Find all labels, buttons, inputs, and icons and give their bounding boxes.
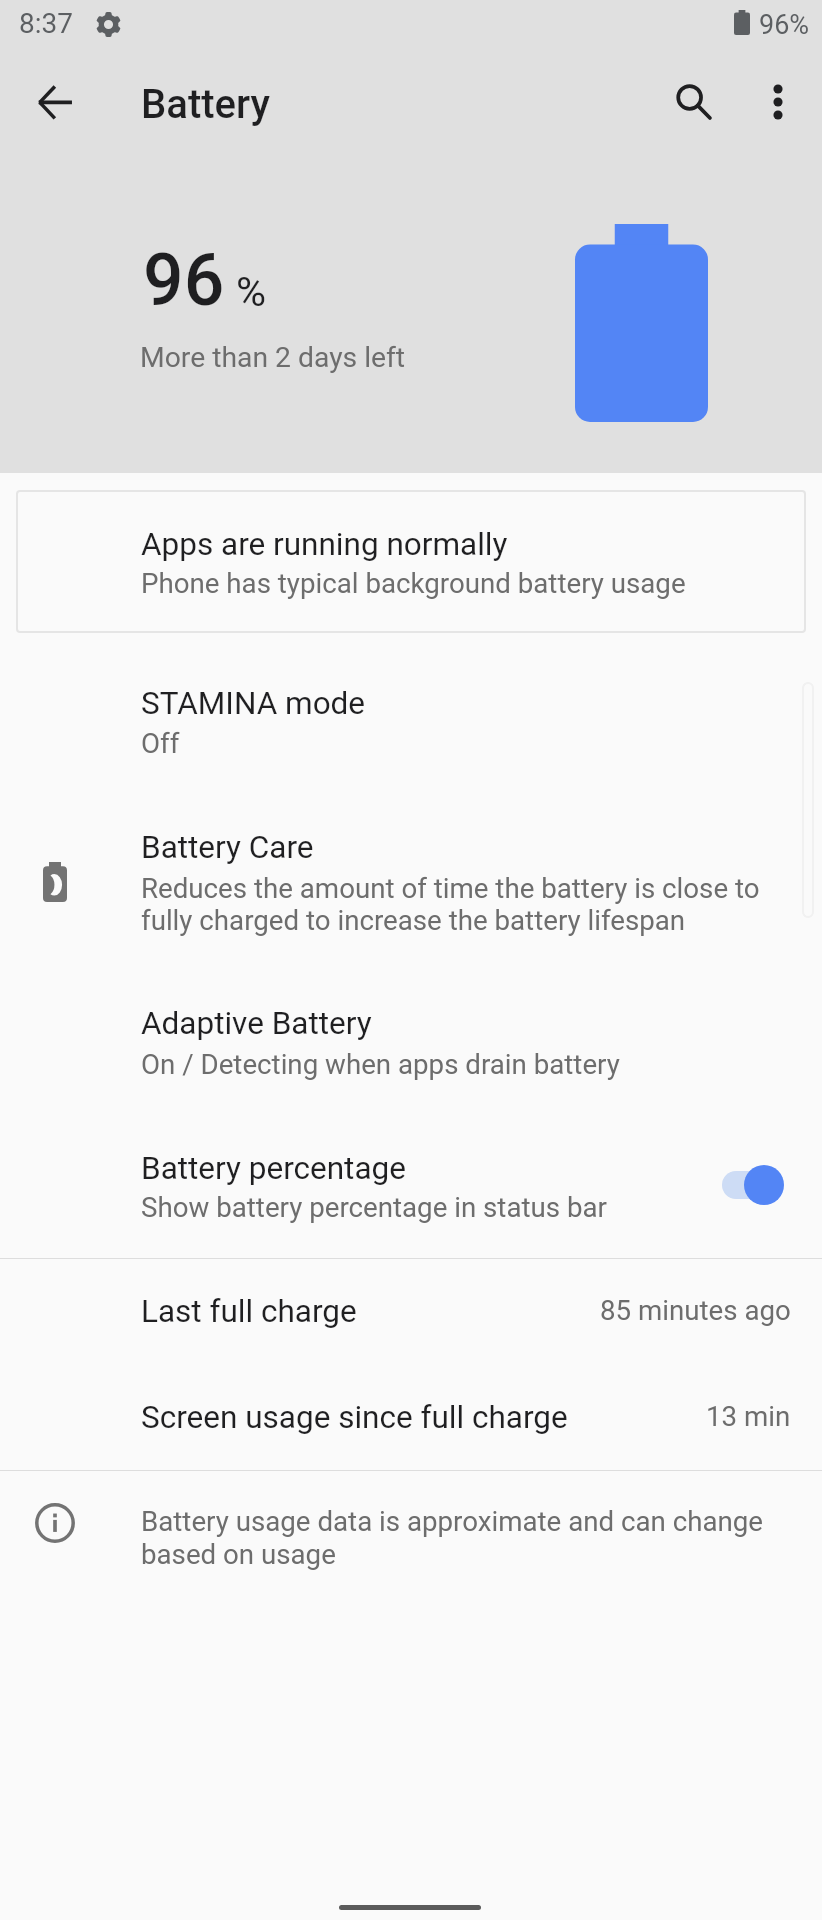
staticText: 96 bbox=[143, 239, 225, 323]
button[interactable]: Adaptive Battery bbox=[0, 980, 822, 1092]
button[interactable]: Battery percentage toggle bbox=[700, 1150, 804, 1220]
staticText: Reduces the amount of time the battery i… bbox=[141, 872, 760, 904]
button[interactable]: Battery Care bbox=[0, 800, 822, 952]
staticText: Battery usage data is approximate and ca… bbox=[141, 1505, 764, 1537]
staticText: On / Detecting when apps drain battery bbox=[141, 1048, 620, 1080]
staticText: Screen usage since full charge bbox=[141, 1399, 568, 1436]
button[interactable]: Screen usage since full charge bbox=[0, 1366, 822, 1468]
staticText: 13 min bbox=[706, 1400, 791, 1432]
staticText: More than 2 days left bbox=[140, 341, 406, 374]
button[interactable]: Last full charge bbox=[0, 1262, 822, 1366]
button[interactable]: Battery percentage bbox=[0, 1120, 822, 1240]
staticText: Adaptive Battery bbox=[141, 1005, 372, 1042]
button[interactable]: Back bbox=[12, 58, 100, 146]
button[interactable]: STAMINA mode bbox=[0, 655, 822, 786]
staticText: Apps are running normally bbox=[141, 526, 508, 563]
staticText: Show battery percentage in status bar bbox=[141, 1191, 607, 1223]
button[interactable]: Search bbox=[650, 58, 738, 146]
button[interactable] bbox=[16, 490, 806, 633]
staticText: Battery percentage bbox=[141, 1150, 406, 1187]
button[interactable]: More options bbox=[734, 58, 822, 146]
staticText: Off bbox=[141, 727, 180, 759]
staticText: Last full charge bbox=[141, 1293, 357, 1330]
staticText: Battery bbox=[141, 81, 270, 128]
staticText: STAMINA mode bbox=[141, 685, 366, 722]
staticText: % bbox=[236, 268, 267, 316]
staticText: Phone has typical background battery usa… bbox=[141, 567, 686, 599]
staticText: Battery Care bbox=[141, 829, 314, 866]
staticText: 8:37 bbox=[19, 7, 73, 40]
staticText: fully charged to increase the battery li… bbox=[141, 904, 686, 936]
staticText: 85 minutes ago bbox=[600, 1294, 791, 1326]
staticText: based on usage bbox=[141, 1538, 336, 1570]
staticText: 96% bbox=[759, 9, 810, 41]
